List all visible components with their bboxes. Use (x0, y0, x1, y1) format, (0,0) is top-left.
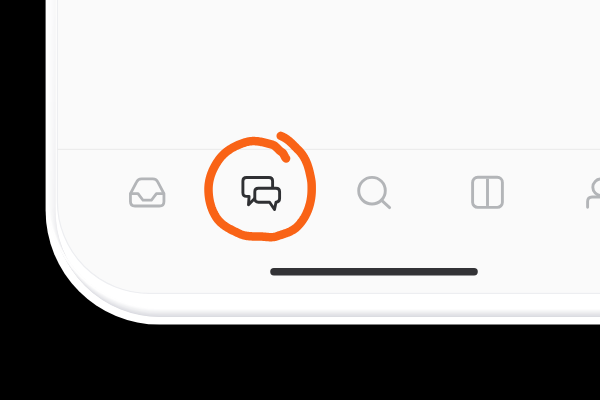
button[interactable]: Chat (205, 150, 320, 293)
button[interactable]: Profile (550, 150, 600, 293)
button[interactable]: Inbox (90, 150, 205, 293)
button[interactable]: Split view (435, 150, 550, 293)
button[interactable]: Search (320, 150, 435, 293)
